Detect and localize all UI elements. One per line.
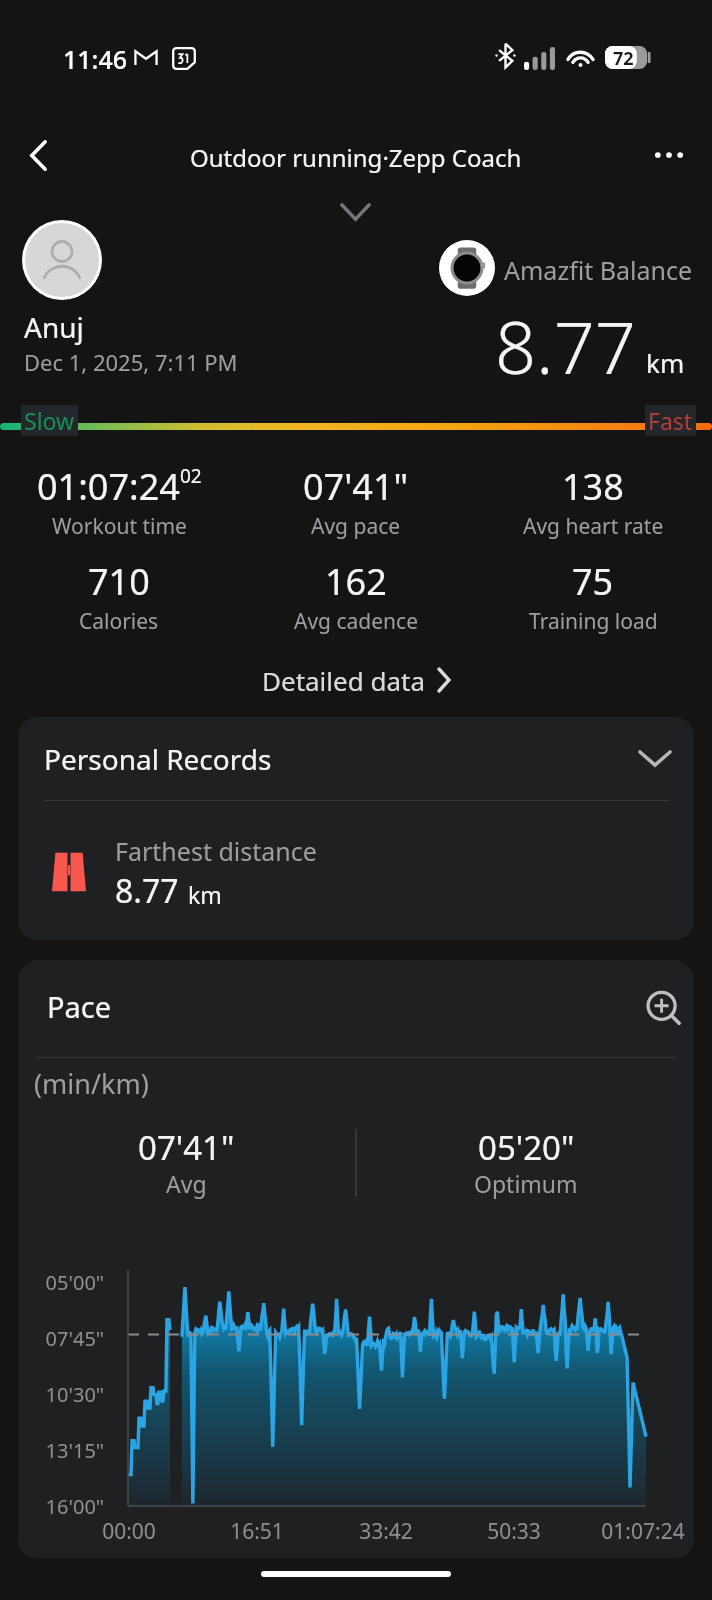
staticText: Avg heart rate bbox=[523, 512, 664, 541]
staticText: 13'15" bbox=[38, 1437, 104, 1464]
button[interactable]: Enlarge chart bbox=[642, 983, 688, 1029]
staticText: Fast bbox=[648, 405, 693, 436]
staticText: 07'45" bbox=[38, 1325, 104, 1352]
staticText: (min/km) bbox=[34, 1065, 149, 1102]
staticText: Personal Records bbox=[44, 740, 272, 778]
button[interactable]: Personal Records bbox=[18, 717, 694, 800]
staticText: 8.77 bbox=[495, 297, 636, 395]
staticText: Outdoor running·Zepp Coach bbox=[190, 141, 522, 174]
staticText: Slow bbox=[24, 405, 75, 436]
staticText: Avg pace bbox=[311, 512, 401, 541]
staticText: 16'00" bbox=[38, 1493, 104, 1520]
staticText: Pace bbox=[47, 987, 112, 1026]
staticText: 8.77 bbox=[115, 869, 179, 913]
staticText: 05'20" bbox=[478, 1125, 575, 1170]
staticText: 11:46 bbox=[63, 42, 128, 76]
staticText: 02 bbox=[180, 463, 202, 489]
staticText: Optimum bbox=[474, 1168, 578, 1199]
staticText: km bbox=[646, 345, 685, 380]
staticText: 72 bbox=[613, 46, 634, 69]
staticText: 10'30" bbox=[38, 1381, 104, 1408]
staticText: 07'41" bbox=[138, 1125, 235, 1170]
staticText: Detailed data bbox=[262, 663, 425, 698]
staticText: Avg bbox=[166, 1168, 207, 1199]
staticText: 33:42 bbox=[316, 1517, 456, 1546]
staticText: 75 bbox=[572, 557, 614, 606]
staticText: 50:33 bbox=[444, 1517, 584, 1546]
button[interactable]: More options bbox=[643, 129, 695, 181]
staticText: 16:51 bbox=[187, 1517, 327, 1546]
staticText: Anuj bbox=[24, 308, 84, 346]
staticText: Dec 1, 2025, 7:11 PM bbox=[24, 347, 238, 377]
staticText: Amazfit Balance bbox=[504, 253, 693, 287]
button[interactable]: Detailed data bbox=[236, 656, 476, 704]
staticText: 05'00" bbox=[38, 1269, 104, 1296]
button[interactable]: Back bbox=[12, 129, 64, 181]
staticText: km bbox=[188, 879, 222, 910]
staticText: Avg cadence bbox=[294, 607, 418, 636]
staticText: 00:00 bbox=[59, 1517, 199, 1546]
button[interactable]: Profile bbox=[25, 223, 99, 297]
staticText: 01:07:24 bbox=[573, 1517, 694, 1546]
staticText: Farthest distance bbox=[115, 834, 317, 868]
staticText: 01:07:24 bbox=[37, 462, 180, 511]
staticText: 710 bbox=[88, 557, 150, 606]
staticText: 138 bbox=[562, 462, 624, 511]
staticText: Training load bbox=[529, 607, 658, 636]
staticText: Calories bbox=[79, 607, 159, 636]
staticText: 162 bbox=[325, 557, 387, 606]
staticText: 07'41" bbox=[303, 462, 409, 511]
staticText: Workout time bbox=[52, 512, 187, 541]
